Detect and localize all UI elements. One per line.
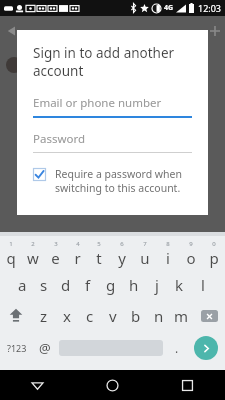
button[interactable]: Backspace	[193, 300, 225, 331]
staticText: u	[140, 248, 150, 268]
staticText: Password	[33, 131, 86, 147]
staticText: .	[175, 340, 179, 356]
button[interactable]: Password	[33, 131, 192, 153]
staticText: Require a password when switching to thi…	[55, 167, 194, 195]
staticText: 4	[76, 240, 80, 248]
staticText: x	[63, 306, 71, 326]
button[interactable]: f	[77, 269, 99, 300]
staticText: t	[96, 248, 102, 268]
staticText: 6	[120, 240, 124, 248]
staticText: 3	[54, 240, 58, 248]
button[interactable]: 8	[156, 238, 179, 269]
button[interactable]: c	[78, 300, 101, 331]
staticText: w	[27, 248, 39, 268]
button[interactable]: z	[32, 300, 55, 331]
button[interactable]: .	[166, 331, 187, 365]
button[interactable]: 0	[202, 238, 225, 269]
staticText: 5	[97, 240, 101, 248]
staticText: q	[6, 248, 16, 268]
button[interactable]: a	[11, 269, 33, 300]
staticText: f	[85, 275, 91, 295]
staticText: s	[40, 275, 48, 295]
staticText: @	[39, 339, 51, 357]
staticText: r	[74, 248, 81, 268]
staticText: 4G	[164, 3, 174, 13]
button[interactable]: s	[33, 269, 55, 300]
button[interactable]: Shift	[0, 300, 32, 331]
button[interactable]: h	[122, 269, 145, 300]
staticText: b	[131, 306, 141, 326]
button[interactable]: l	[191, 269, 214, 300]
staticText: d	[61, 275, 71, 295]
button[interactable]: 3	[44, 238, 66, 269]
staticText: Sign in to add another account	[33, 44, 188, 80]
button[interactable]: Email or phone number	[33, 95, 192, 118]
button[interactable]: 9	[179, 238, 202, 269]
staticText: o	[186, 248, 196, 268]
button[interactable]: 1	[0, 238, 22, 269]
button[interactable]: m	[170, 300, 193, 331]
button[interactable]: 5	[88, 238, 110, 269]
staticText: v	[109, 306, 117, 326]
button[interactable]: @	[33, 331, 56, 365]
staticText: i	[166, 248, 170, 268]
staticText: m	[174, 306, 189, 326]
staticText: z	[40, 306, 48, 326]
staticText: 0	[212, 240, 216, 248]
staticText: 1	[9, 240, 13, 248]
staticText: j	[155, 275, 159, 295]
button[interactable]: Require a password when switching to thi…	[33, 167, 194, 195]
staticText: 8	[166, 240, 170, 248]
staticText: 2	[31, 240, 35, 248]
button[interactable]: 4	[66, 238, 88, 269]
button[interactable]: 2	[22, 238, 44, 269]
staticText: 9	[189, 240, 193, 248]
button[interactable]: Home	[75, 370, 150, 400]
staticText: h	[129, 275, 139, 295]
button[interactable]: ?123	[0, 331, 33, 365]
button[interactable]: j	[145, 269, 168, 300]
button[interactable]: Recents	[150, 370, 225, 400]
button[interactable]: 6	[110, 238, 133, 269]
button[interactable]: b	[124, 300, 147, 331]
staticText: 7	[143, 240, 147, 248]
button[interactable]: v	[101, 300, 124, 331]
button[interactable]: Enter	[187, 331, 225, 365]
button[interactable]: n	[147, 300, 170, 331]
button[interactable]: k	[168, 269, 191, 300]
button[interactable]: g	[99, 269, 122, 300]
staticText: Email or phone number	[33, 95, 162, 111]
staticText: e	[51, 248, 60, 268]
staticText: n	[154, 306, 164, 326]
staticText: l	[201, 275, 205, 295]
staticText: 12:03	[198, 2, 222, 14]
staticText: y	[118, 248, 126, 268]
button[interactable]: d	[55, 269, 77, 300]
staticText: ?123	[7, 342, 27, 354]
button[interactable]: Back	[0, 370, 75, 400]
staticText: c	[86, 306, 94, 326]
staticText: k	[175, 275, 184, 295]
staticText: a	[18, 275, 27, 295]
button[interactable]: x	[55, 300, 78, 331]
button[interactable]: 7	[133, 238, 156, 269]
staticText: g	[106, 275, 116, 295]
staticText: p	[209, 248, 219, 268]
